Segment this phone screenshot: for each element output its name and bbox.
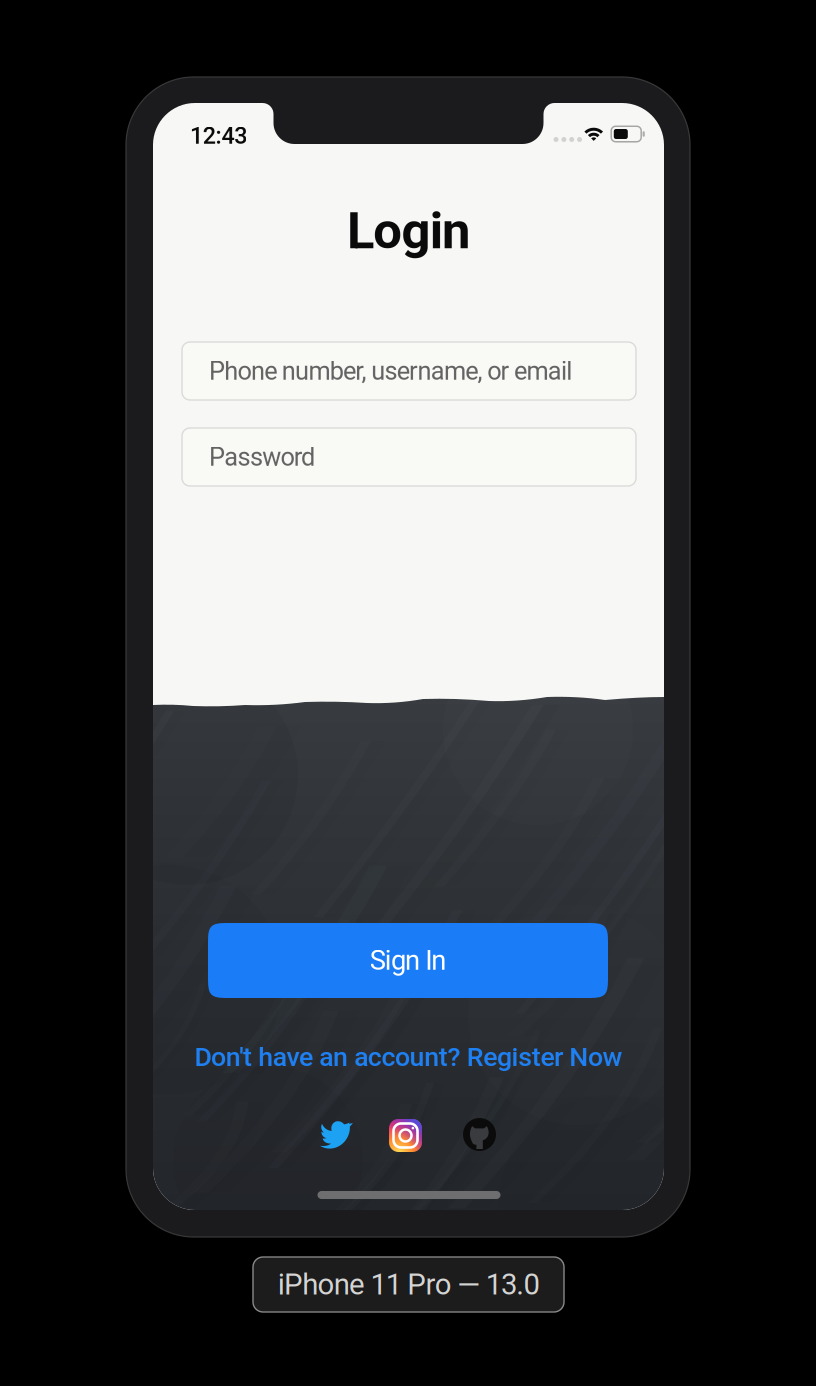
button[interactable]: Phone number, username, or email xyxy=(182,342,636,400)
staticText: Password xyxy=(209,442,315,472)
button[interactable]: Password xyxy=(182,428,636,486)
staticText: 12:43 xyxy=(190,122,247,149)
button[interactable]: GitHub xyxy=(463,1118,496,1151)
staticText: Login xyxy=(347,201,470,261)
button[interactable]: Instagram xyxy=(389,1119,422,1152)
staticText: iPhone 11 Pro — 13.0 xyxy=(278,1267,539,1302)
staticText: Sign In xyxy=(370,944,446,976)
button[interactable]: Sign In xyxy=(208,923,608,998)
staticText: Phone number, username, or email xyxy=(209,356,572,386)
button[interactable]: Don't have an account? Register Now xyxy=(153,1039,664,1075)
button[interactable]: Twitter xyxy=(320,1119,353,1149)
staticText: Don't have an account? Register Now xyxy=(194,1041,623,1073)
